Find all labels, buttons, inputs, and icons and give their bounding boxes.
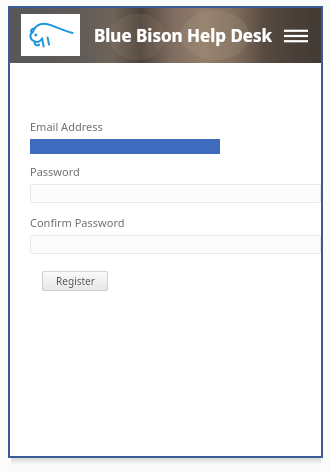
- staticText: Register: [56, 274, 95, 288]
- staticText: Email Address: [30, 119, 103, 134]
- button[interactable]: Confirm Password field: [30, 235, 321, 254]
- button[interactable]: Blue Bison logo: [21, 14, 80, 56]
- staticText: Blue Bison Help Desk: [94, 24, 273, 47]
- staticText: Confirm Password: [30, 215, 125, 230]
- button[interactable]: Menu: [281, 23, 311, 49]
- button[interactable]: Password field: [30, 184, 321, 203]
- staticText: Password: [30, 164, 80, 179]
- button[interactable]: Register: [42, 271, 108, 291]
